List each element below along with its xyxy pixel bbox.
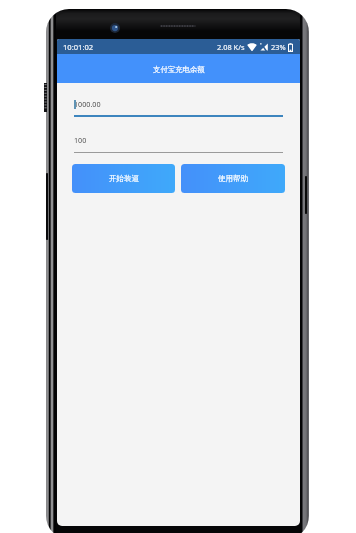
staticText: 使用帮助 — [218, 174, 248, 183]
button[interactable]: 1000.00 — [74, 95, 283, 117]
staticText: 10:01:02 — [63, 42, 94, 52]
staticText: 开始装逼 — [109, 174, 139, 183]
staticText: 2.08 K/s — [217, 42, 245, 52]
button[interactable]: 100 — [74, 131, 283, 153]
button[interactable]: 使用帮助 — [181, 164, 285, 193]
button[interactable]: 开始装逼 — [72, 164, 175, 193]
staticText: 23% — [271, 42, 286, 52]
staticText: 1000.00 — [74, 99, 101, 109]
staticText: 100 — [74, 135, 87, 145]
staticText: 支付宝充电余额 — [153, 65, 205, 74]
